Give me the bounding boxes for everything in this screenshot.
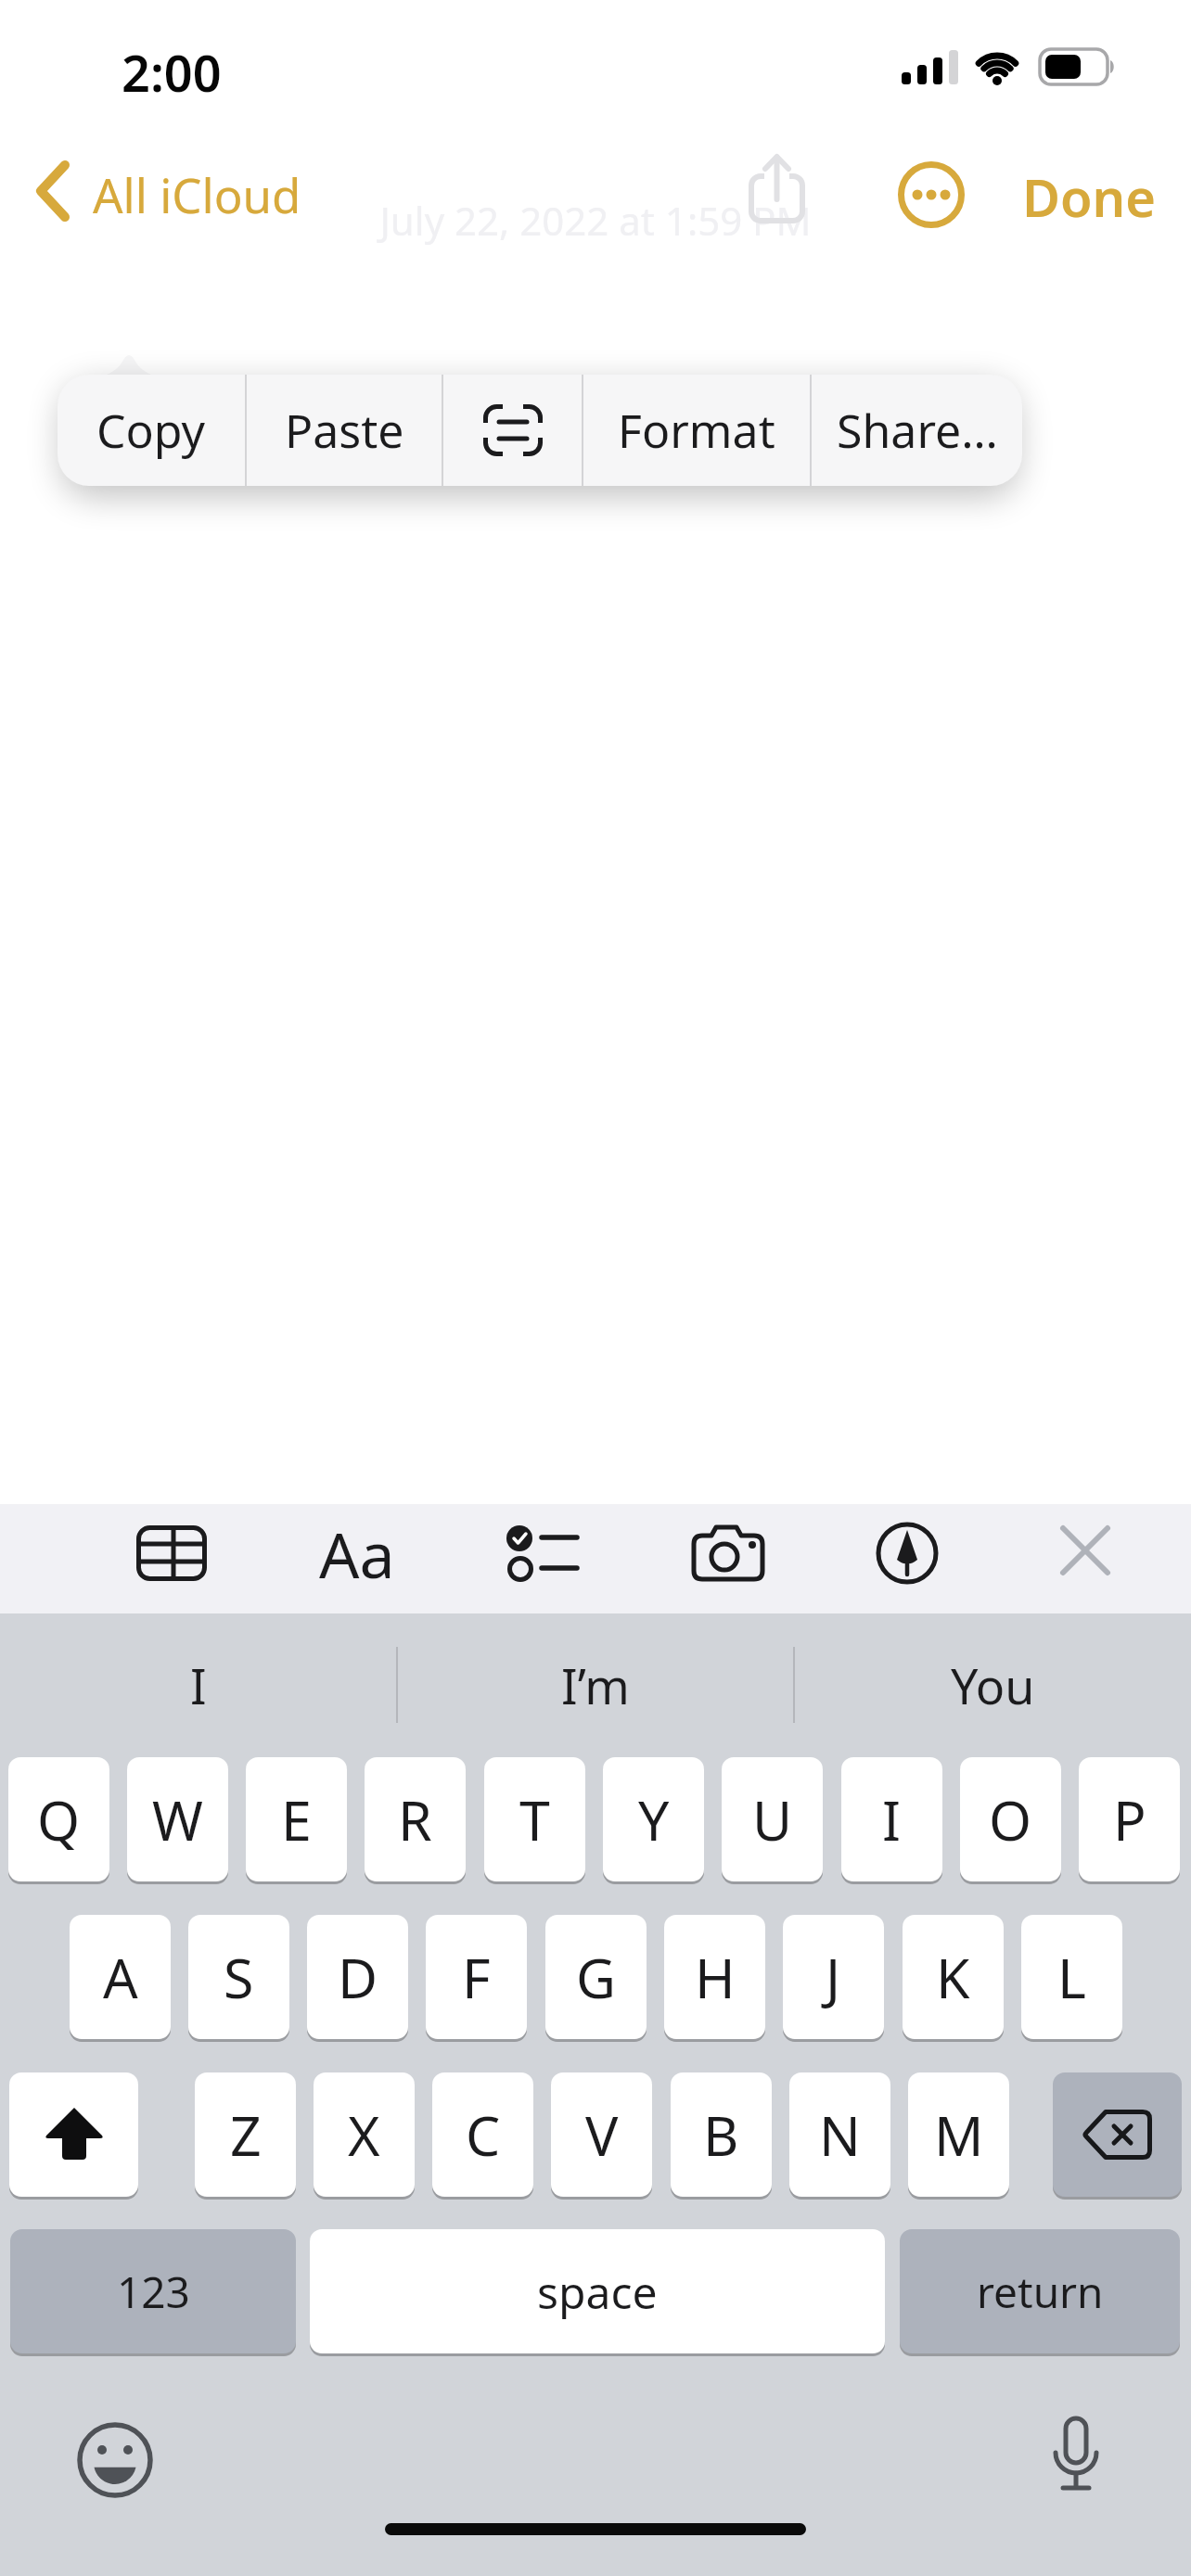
button[interactable] xyxy=(896,159,967,230)
button[interactable]: Paste xyxy=(247,375,442,486)
button[interactable]: T xyxy=(484,1757,585,1881)
button[interactable]: Y xyxy=(603,1757,704,1881)
staticText: R xyxy=(398,1782,432,1856)
staticText: B xyxy=(703,2098,739,2172)
button[interactable]: W xyxy=(127,1757,228,1881)
button[interactable]: Done xyxy=(1011,153,1150,227)
staticText: M xyxy=(934,2098,984,2172)
button[interactable]: O xyxy=(960,1757,1061,1881)
staticText: I xyxy=(882,1782,902,1856)
button[interactable]: C xyxy=(432,2072,533,2197)
staticText: D xyxy=(338,1940,378,2014)
staticText: N xyxy=(819,2098,861,2172)
button[interactable]: E xyxy=(246,1757,347,1881)
button[interactable]: I’m xyxy=(397,1613,794,1757)
staticText: E xyxy=(281,1782,312,1856)
button[interactable]: H xyxy=(664,1915,765,2039)
staticText: space xyxy=(537,2262,658,2322)
button[interactable]: I xyxy=(841,1757,942,1881)
button[interactable]: S xyxy=(188,1915,289,2039)
button[interactable]: R xyxy=(365,1757,466,1881)
button[interactable]: U xyxy=(722,1757,823,1881)
staticText: W xyxy=(152,1782,203,1856)
button[interactable] xyxy=(9,2072,138,2197)
button[interactable]: Z xyxy=(195,2072,296,2197)
staticText: G xyxy=(576,1940,616,2014)
staticText: Aa xyxy=(319,1511,395,1597)
button[interactable]: L xyxy=(1021,1915,1122,2039)
staticText: T xyxy=(519,1782,550,1856)
button[interactable]: D xyxy=(307,1915,408,2039)
staticText: All iCloud xyxy=(93,162,301,226)
staticText: Y xyxy=(638,1782,670,1856)
staticText: return xyxy=(977,2263,1104,2321)
staticText: O xyxy=(989,1782,1032,1856)
button[interactable]: space xyxy=(310,2229,885,2353)
staticText: Z xyxy=(230,2098,262,2172)
button[interactable] xyxy=(1044,1509,1127,1592)
staticText: A xyxy=(103,1940,138,2014)
staticText: F xyxy=(462,1940,491,2014)
staticText: P xyxy=(1113,1782,1146,1856)
staticText: K xyxy=(936,1940,970,2014)
button[interactable]: B xyxy=(671,2072,772,2197)
button[interactable]: M xyxy=(908,2072,1009,2197)
staticText: 123 xyxy=(117,2263,190,2321)
button[interactable] xyxy=(737,144,821,236)
staticText: J xyxy=(826,1940,841,2014)
staticText: Share… xyxy=(837,399,998,462)
button[interactable]: N xyxy=(789,2072,890,2197)
button[interactable]: I xyxy=(0,1613,397,1757)
staticText: Done xyxy=(1022,161,1157,232)
button[interactable]: Share… xyxy=(812,375,1022,486)
button[interactable]: 123 xyxy=(10,2229,296,2353)
button[interactable]: V xyxy=(551,2072,652,2197)
staticText: C xyxy=(466,2098,501,2172)
button[interactable] xyxy=(1053,2072,1182,2197)
staticText: I’m xyxy=(561,1652,630,1718)
staticText: X xyxy=(348,2098,380,2172)
button[interactable]: Format xyxy=(583,375,810,486)
button[interactable]: G xyxy=(545,1915,647,2039)
staticText: You xyxy=(951,1652,1035,1718)
button[interactable]: Copy xyxy=(58,375,245,486)
staticText: U xyxy=(752,1782,793,1856)
button[interactable]: You xyxy=(794,1613,1191,1757)
button[interactable] xyxy=(116,1507,227,1600)
button[interactable] xyxy=(487,1507,598,1600)
staticText: V xyxy=(585,2098,619,2172)
staticText: Q xyxy=(37,1782,81,1856)
button[interactable] xyxy=(443,375,582,486)
button[interactable] xyxy=(1030,2411,1122,2504)
button[interactable] xyxy=(69,2414,161,2506)
button[interactable]: All iCloud xyxy=(28,153,306,227)
button[interactable]: F xyxy=(426,1915,527,2039)
button[interactable]: P xyxy=(1079,1757,1180,1881)
staticText: S xyxy=(224,1940,254,2014)
staticText: L xyxy=(1057,1940,1086,2014)
button[interactable]: Aa xyxy=(306,1502,408,1604)
staticText: Copy xyxy=(96,399,206,462)
staticText: I xyxy=(190,1652,207,1718)
staticText: 2:00 xyxy=(122,38,222,107)
button[interactable]: Q xyxy=(8,1757,109,1881)
button[interactable]: J xyxy=(783,1915,884,2039)
staticText: Paste xyxy=(285,399,404,462)
staticText: H xyxy=(695,1940,736,2014)
button[interactable] xyxy=(861,1507,954,1600)
button[interactable] xyxy=(672,1507,784,1600)
button[interactable]: K xyxy=(903,1915,1004,2039)
button[interactable]: return xyxy=(900,2229,1180,2353)
staticText: July 22, 2022 at 1:59 PM xyxy=(0,194,1191,247)
button[interactable]: A xyxy=(70,1915,171,2039)
button[interactable]: X xyxy=(314,2072,415,2197)
staticText: Format xyxy=(618,399,775,462)
